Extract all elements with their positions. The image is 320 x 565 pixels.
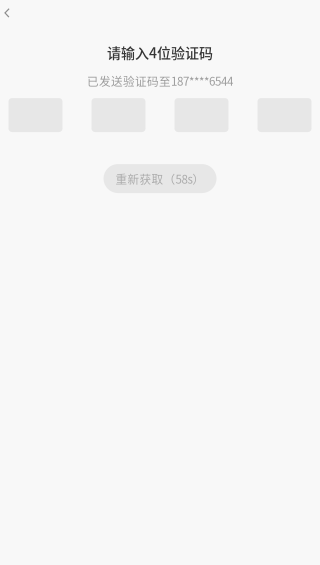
button[interactable]: Back	[0, 0, 34, 26]
staticText: 请输入4位验证码	[107, 42, 213, 62]
staticText: 重新获取（58s）	[115, 170, 204, 187]
button[interactable]: 重新获取（58s）	[103, 164, 216, 193]
staticText: 已发送验证码至187****6544	[87, 72, 233, 89]
